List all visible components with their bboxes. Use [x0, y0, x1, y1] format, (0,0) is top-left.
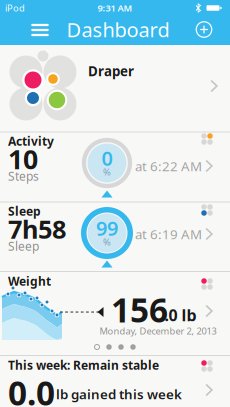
staticText: lb gained this week: [56, 385, 182, 403]
staticText: Weight: [8, 273, 51, 289]
staticText: 0: [101, 145, 112, 171]
button[interactable]: Activity: [0, 132, 230, 201]
staticText: Dashboard: [66, 16, 169, 43]
button[interactable]: Add: [194, 19, 214, 39]
staticText: Sleep: [8, 238, 39, 254]
staticText: .0 lb: [164, 304, 196, 326]
staticText: at 6:22 AM: [135, 157, 202, 175]
button[interactable]: This week: Remain stable: [0, 355, 230, 407]
staticText: Sleep: [8, 203, 41, 219]
staticText: 10: [8, 141, 38, 177]
staticText: Steps: [8, 168, 39, 184]
staticText: %: [103, 166, 111, 178]
button[interactable]: Menu: [26, 18, 54, 42]
staticText: at 6:19 AM: [135, 225, 202, 243]
staticText: This week: Remain stable: [8, 357, 159, 373]
button[interactable]: Draper: [0, 45, 230, 132]
staticText: 99: [96, 215, 118, 241]
staticText: 156: [111, 287, 168, 332]
staticText: Draper: [88, 62, 134, 80]
button[interactable]: Sleep: [0, 202, 230, 271]
button[interactable]: Weight: [0, 271, 230, 355]
staticText: iPod: [5, 2, 25, 14]
staticText: 7h58: [8, 212, 66, 246]
staticText: Activity: [8, 133, 54, 149]
staticText: %: [103, 236, 111, 248]
staticText: 0.0: [8, 370, 55, 407]
staticText: Monday, December 2, 2013: [99, 325, 216, 337]
staticText: 9:31 AM: [97, 2, 132, 14]
